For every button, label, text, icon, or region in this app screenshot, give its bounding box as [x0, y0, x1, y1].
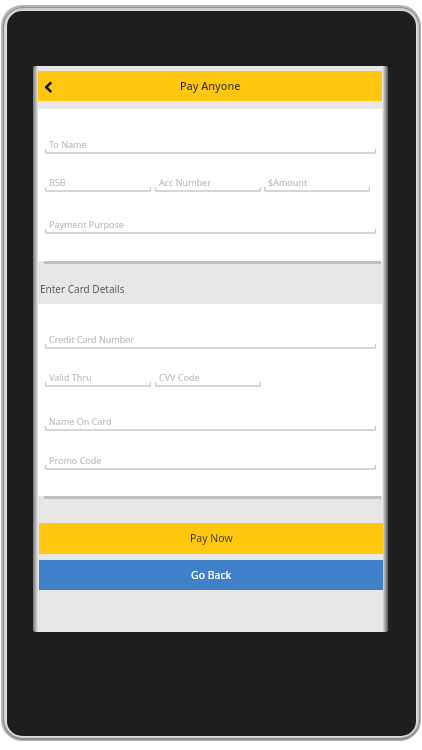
staticText: Go Back: [191, 568, 232, 582]
staticText: Payment Purpose: [49, 218, 124, 230]
button[interactable]: BSB: [45, 173, 151, 195]
button[interactable]: Name On Card: [45, 412, 376, 434]
staticText: BSB: [49, 176, 66, 188]
staticText: CVV Code: [159, 371, 200, 383]
button[interactable]: Acc Number: [155, 173, 261, 195]
button[interactable]: To Name: [45, 135, 376, 157]
button[interactable]: Pay Now: [39, 523, 383, 554]
button[interactable]: CVV Code: [155, 368, 261, 390]
staticText: Credit Card Number: [49, 333, 135, 345]
staticText: Acc Number: [159, 176, 211, 188]
button[interactable]: Credit Card Number: [45, 330, 376, 352]
staticText: Name On Card: [49, 415, 112, 427]
staticText: To Name: [49, 138, 87, 150]
button[interactable]: $Amount: [264, 173, 370, 195]
button[interactable]: Valid Thru: [45, 368, 151, 390]
staticText: Enter Card Details: [40, 282, 125, 296]
button[interactable]: Go Back: [39, 560, 383, 590]
staticText: $Amount: [268, 176, 308, 188]
button[interactable]: Back: [38, 71, 68, 101]
button[interactable]: Promo Code: [45, 451, 376, 473]
staticText: Valid Thru: [49, 371, 92, 383]
staticText: Pay Now: [190, 531, 233, 545]
button[interactable]: Payment Purpose: [45, 215, 376, 237]
staticText: Promo Code: [49, 454, 102, 466]
staticText: Pay Anyone: [180, 78, 241, 93]
